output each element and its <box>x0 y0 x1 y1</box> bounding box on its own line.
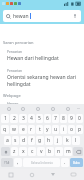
button[interactable]: Go <box>70 158 83 167</box>
button[interactable]: Search <box>3 10 81 22</box>
button[interactable]: r <box>28 125 35 134</box>
staticText: 9 <box>70 115 73 122</box>
staticText: d <box>22 137 26 144</box>
staticText: s <box>14 137 17 144</box>
staticText: m <box>66 148 71 155</box>
button[interactable]: j <box>54 136 62 145</box>
button[interactable]: Symbols <box>1 158 13 167</box>
button[interactable]: Shift <box>1 147 10 156</box>
staticText: 3 <box>22 115 25 122</box>
button[interactable]: 4 <box>28 114 35 123</box>
button[interactable]: 1 <box>1 114 9 123</box>
button[interactable]: Sticker <box>30 104 45 113</box>
staticText: Webpage <box>3 93 21 98</box>
staticText: Pencarian <box>7 69 22 73</box>
button[interactable]: Microphone <box>45 104 60 113</box>
button[interactable]: 7 <box>52 114 59 123</box>
button[interactable]: 8 <box>60 114 67 123</box>
staticText: n <box>57 148 61 155</box>
button[interactable]: h <box>45 136 53 145</box>
staticText: Hewan dari hellingdat <box>7 55 59 62</box>
staticText: x <box>22 148 25 155</box>
button[interactable]: Settings <box>2 104 16 113</box>
button[interactable]: Back <box>42 169 63 180</box>
button[interactable]: , <box>14 158 22 167</box>
staticText: 7 <box>54 115 57 122</box>
button[interactable]: x <box>19 147 27 156</box>
button[interactable]: y <box>44 125 51 134</box>
button[interactable]: 6 <box>44 114 51 123</box>
staticText: 5 <box>38 115 41 122</box>
button[interactable]: Voice search <box>72 13 78 19</box>
staticText: Hewan <box>7 101 19 104</box>
button[interactable]: p <box>76 125 83 134</box>
button[interactable]: i <box>60 125 67 134</box>
button[interactable]: More <box>75 104 82 113</box>
staticText: Orientsi sekarang hewan dari hellingdat <box>7 74 81 88</box>
staticText: y <box>46 126 49 133</box>
button[interactable]: Emoji <box>60 104 75 113</box>
staticText: o <box>70 126 74 133</box>
staticText: 8 <box>62 115 65 122</box>
staticText: 2 <box>13 115 16 122</box>
button[interactable]: e <box>19 125 27 134</box>
button[interactable]: 9 <box>68 114 75 123</box>
button[interactable]: m <box>64 147 72 156</box>
button[interactable]: f <box>28 136 35 145</box>
button[interactable]: 2 <box>10 114 18 123</box>
button[interactable]: Pencarian <box>0 49 84 63</box>
button[interactable]: c <box>28 147 36 156</box>
button[interactable]: s <box>12 136 19 145</box>
button[interactable]: l <box>72 136 80 145</box>
staticText: f <box>31 137 33 144</box>
staticText: z <box>13 148 16 155</box>
staticText: Saran pencarian <box>3 40 34 45</box>
button[interactable]: g <box>36 136 44 145</box>
button[interactable]: . <box>61 158 69 167</box>
staticText: a <box>6 137 9 144</box>
button[interactable]: 0 <box>76 114 83 123</box>
button[interactable]: v <box>37 147 45 156</box>
staticText: v <box>40 148 43 155</box>
staticText: 4 <box>30 115 33 122</box>
button[interactable]: b <box>46 147 54 156</box>
button[interactable]: k <box>63 136 71 145</box>
button[interactable]: Backspace <box>73 147 83 156</box>
staticText: e <box>22 126 25 133</box>
button[interactable]: Home <box>21 169 42 180</box>
staticText: ?1# <box>4 161 10 165</box>
button[interactable]: d <box>20 136 27 145</box>
button[interactable]: 3 <box>19 114 27 123</box>
button[interactable]: w <box>10 125 18 134</box>
button[interactable]: z <box>11 147 18 156</box>
button[interactable]: u <box>52 125 59 134</box>
button[interactable]: Clipboard <box>16 104 30 113</box>
staticText: i <box>63 126 65 133</box>
button[interactable]: n <box>55 147 63 156</box>
staticText: 0 <box>78 115 81 122</box>
staticText: g <box>38 137 42 144</box>
staticText: 6 <box>46 115 49 122</box>
staticText: q <box>3 126 7 133</box>
staticText: Buka <box>73 161 80 165</box>
button[interactable]: Keyboard <box>63 169 84 180</box>
button[interactable]: Recents <box>0 169 21 180</box>
button[interactable]: t <box>36 125 43 134</box>
staticText: c <box>31 148 34 155</box>
staticText: w <box>12 126 16 133</box>
button[interactable]: Pencarian <box>0 68 84 89</box>
staticText: Bahasa Indonesia <box>31 161 53 165</box>
other: Search <box>6 14 11 19</box>
staticText: ··· <box>77 106 81 111</box>
staticText: k <box>66 137 69 144</box>
button[interactable]: 5 <box>36 114 43 123</box>
button[interactable]: o <box>68 125 75 134</box>
button[interactable]: Space <box>23 158 60 167</box>
staticText: l <box>75 137 77 144</box>
staticText: b <box>48 148 52 155</box>
button[interactable]: a <box>4 136 11 145</box>
button[interactable]: q <box>1 125 9 134</box>
staticText: 1 <box>4 115 7 122</box>
staticText: , <box>17 159 19 166</box>
staticText: h <box>47 137 51 144</box>
